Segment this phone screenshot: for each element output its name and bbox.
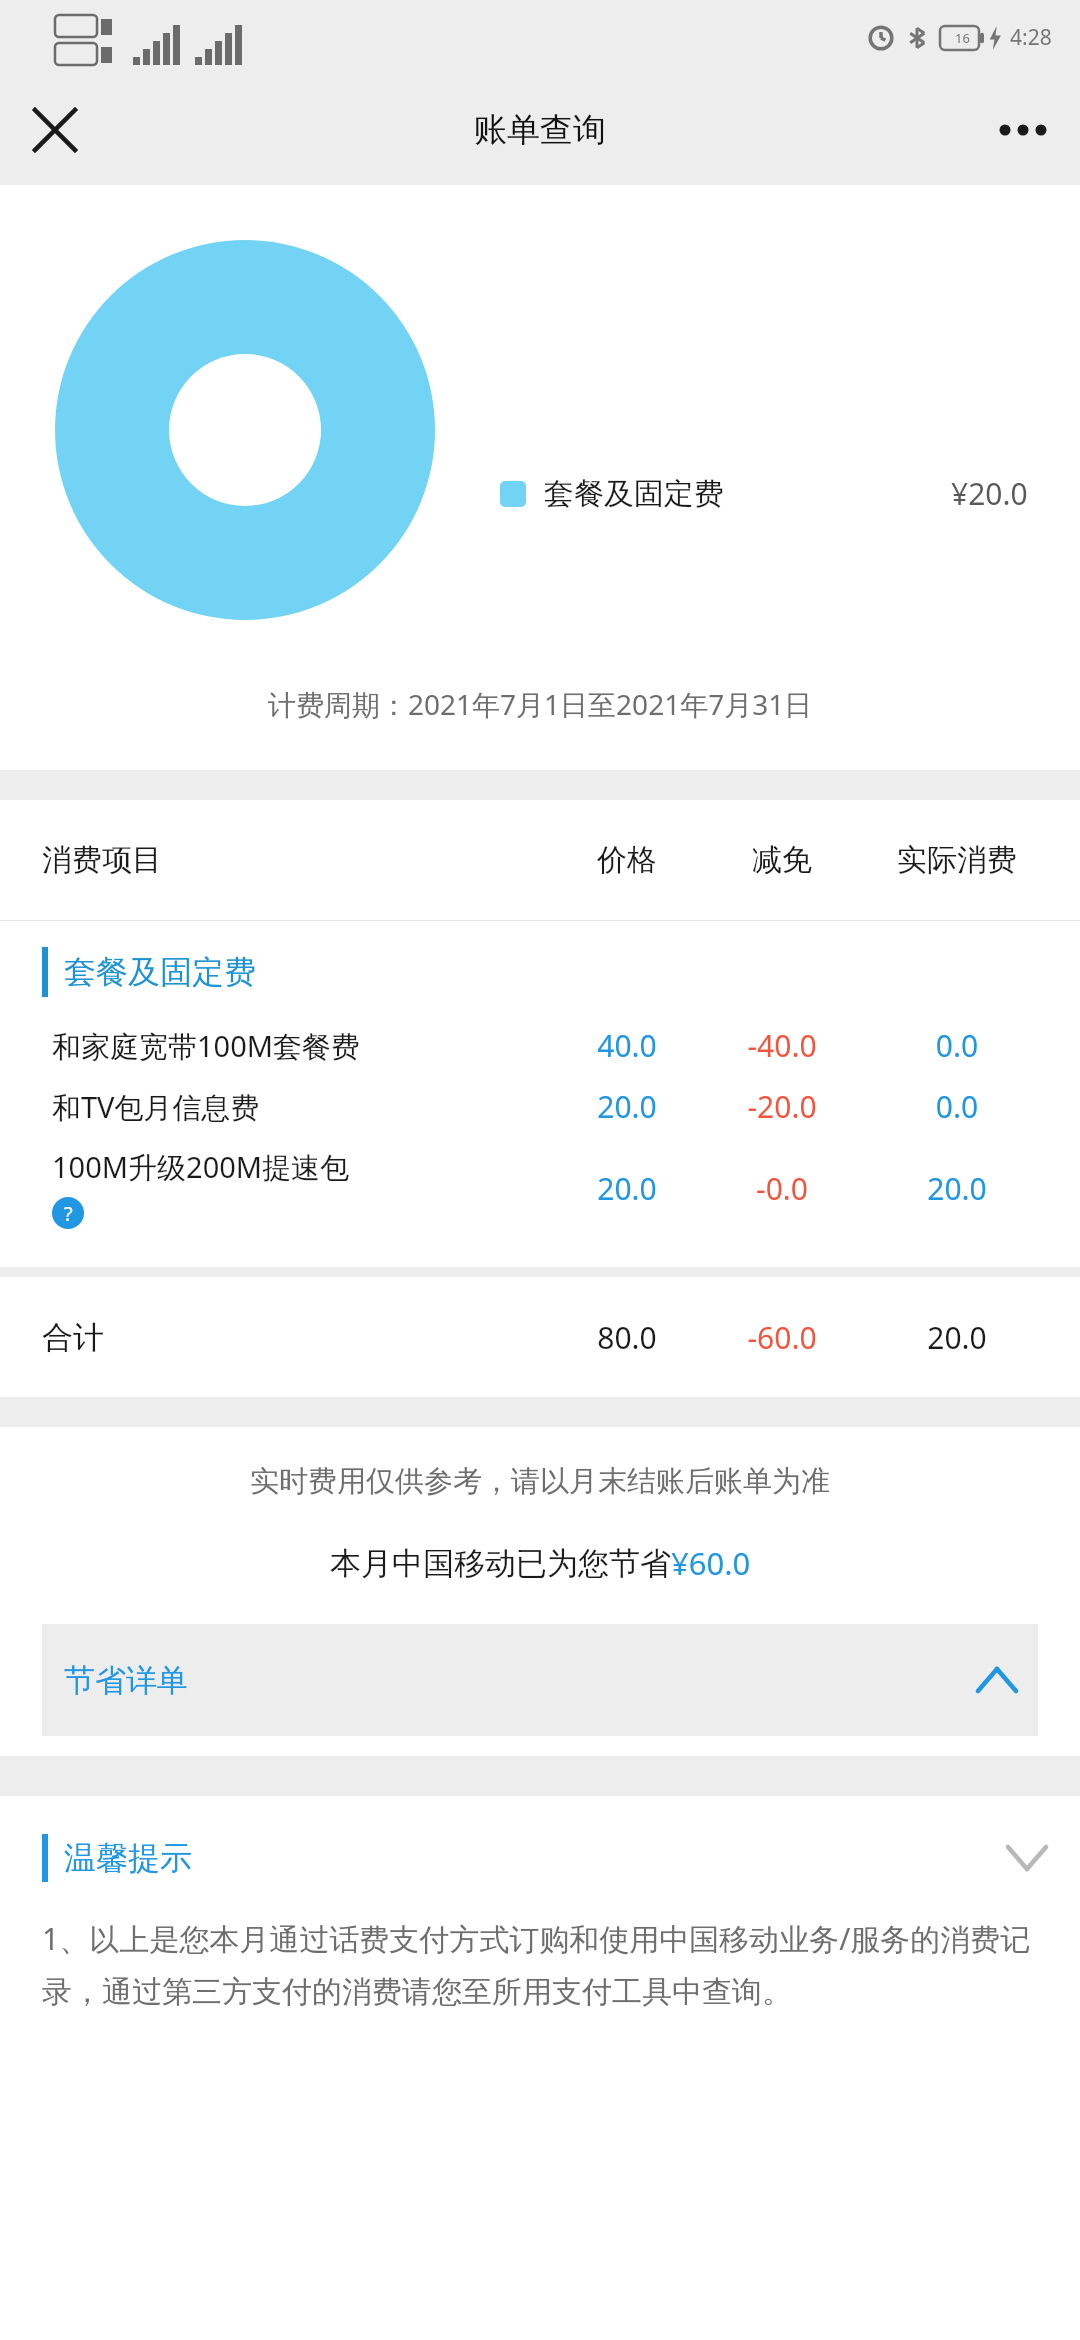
staticText: 4:28 <box>1010 23 1052 52</box>
staticText: -60.0 <box>702 1317 862 1358</box>
button[interactable]: 温馨提示 <box>42 1834 1046 1882</box>
staticText: 40.0 <box>552 1025 702 1066</box>
staticText: 20.0 <box>552 1086 702 1127</box>
staticText: ¥60.0 <box>671 1542 751 1584</box>
staticText: 实时费用仅供参考，请以月末结账后账单为准 <box>250 1463 830 1500</box>
staticText: 套餐及固定费 <box>64 952 256 992</box>
staticText: 价格 <box>552 841 702 879</box>
staticText: 和家庭宽带100M套餐费 <box>52 1026 361 1066</box>
staticText: 温馨提示 <box>64 1838 192 1878</box>
staticText: -40.0 <box>702 1025 862 1066</box>
button[interactable]: More options <box>988 95 1058 165</box>
other: Help <box>52 1197 84 1229</box>
staticText: 100M升级200M提速包 <box>52 1147 350 1187</box>
staticText: -0.0 <box>702 1168 862 1209</box>
staticText: -20.0 <box>702 1086 862 1127</box>
staticText: 和TV包月信息费 <box>52 1087 260 1127</box>
staticText: 节省详单 <box>64 1661 188 1700</box>
button[interactable]: 100M升级200M提速包 <box>52 1147 1052 1229</box>
staticText: 账单查询 <box>474 109 606 151</box>
other: Expand <box>1008 1847 1046 1869</box>
staticText: 20.0 <box>862 1317 1052 1358</box>
staticText: 20.0 <box>552 1168 702 1209</box>
staticText: 本月中国移动已为您节省 <box>330 1544 671 1583</box>
staticText: 80.0 <box>552 1317 702 1358</box>
button[interactable]: 和TV包月信息费 <box>52 1086 1052 1127</box>
staticText: 16 <box>955 29 970 47</box>
staticText: 1、以上是您本月通过话费支付方式订购和使用中国移动业务/服务的消费记录，通过第三… <box>42 1918 1038 2011</box>
staticText: 合计 <box>42 1318 104 1357</box>
staticText: 套餐及固定费 <box>544 475 724 513</box>
staticText: ¥20.0 <box>951 473 1028 514</box>
button[interactable]: 节省详单 <box>42 1624 1038 1736</box>
button[interactable]: Close <box>20 95 90 165</box>
staticText: ? <box>64 1200 73 1227</box>
staticText: 减免 <box>702 841 862 879</box>
staticText: 0.0 <box>862 1025 1052 1066</box>
staticText: 0.0 <box>862 1086 1052 1127</box>
button[interactable]: 和家庭宽带100M套餐费 <box>52 1025 1052 1066</box>
staticText: 实际消费 <box>862 841 1052 879</box>
staticText: 20.0 <box>862 1168 1052 1209</box>
staticText: 计费周期：2021年7月1日至2021年7月31日 <box>268 685 813 723</box>
staticText: 消费项目 <box>42 841 162 879</box>
